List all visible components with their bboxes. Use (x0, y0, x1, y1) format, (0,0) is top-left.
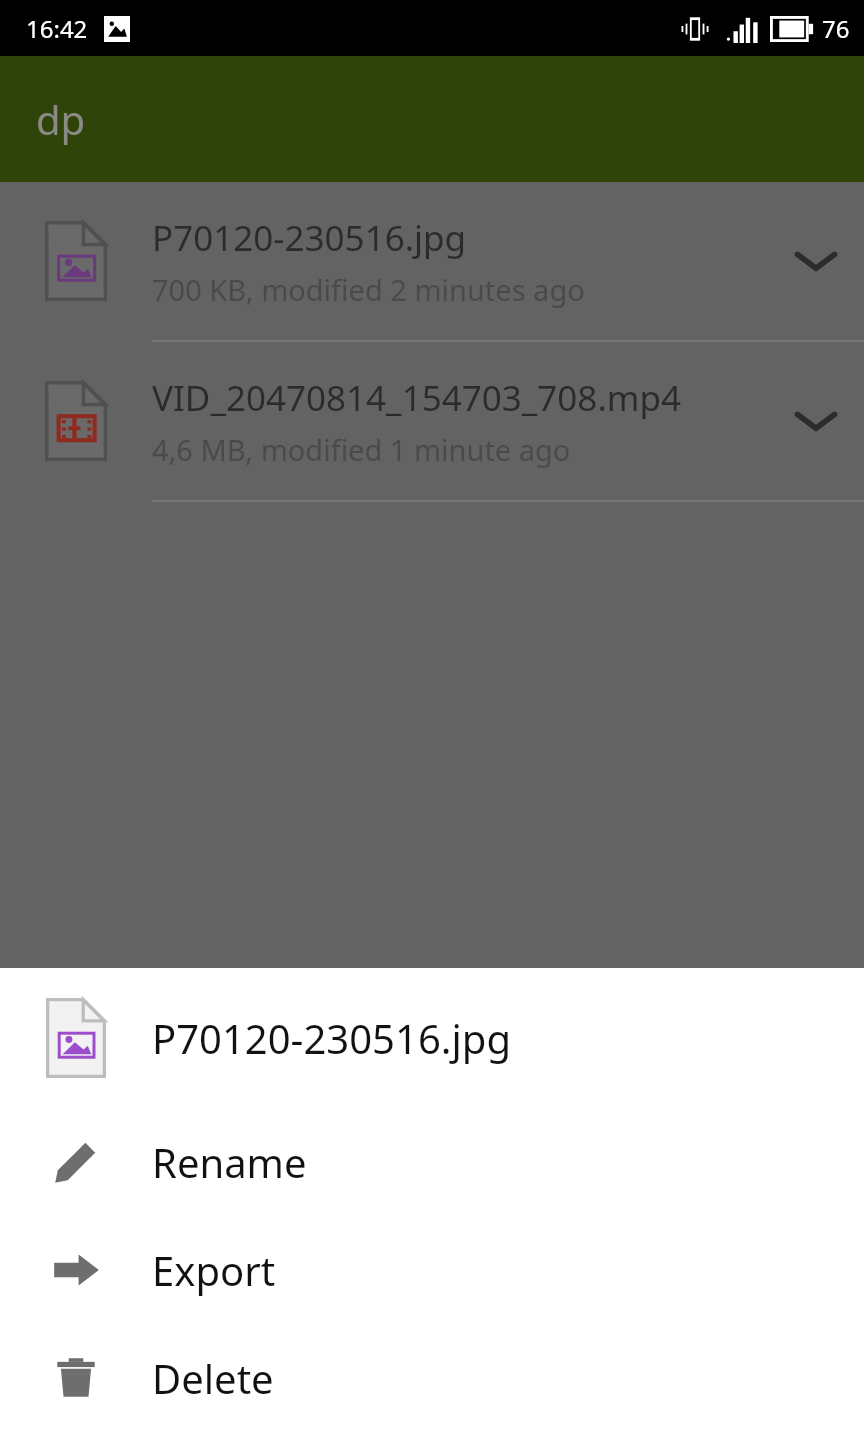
button[interactable]: Export (0, 1216, 864, 1324)
staticText: Rename (152, 1135, 307, 1189)
staticText: 700 KB, modified 2 minutes ago (152, 270, 585, 309)
staticText: Delete (152, 1351, 274, 1405)
staticText: P70120-230516.jpg (152, 214, 467, 262)
button[interactable]: VID_20470814_154703_708.mp4 (0, 342, 864, 500)
button[interactable]: P70120-230516.jpg (0, 968, 864, 1108)
staticText: dp (36, 92, 86, 146)
button[interactable]: Rename (0, 1108, 864, 1216)
staticText: 16:42 (26, 12, 88, 45)
staticText: 4,6 MB, modified 1 minute ago (152, 430, 571, 469)
button[interactable]: P70120-230516.jpg (0, 182, 864, 340)
staticText: Export (152, 1243, 276, 1297)
button[interactable]: Expand (768, 342, 864, 500)
button[interactable]: Delete (0, 1324, 864, 1432)
button[interactable]: Expand (768, 182, 864, 340)
staticText: P70120-230516.jpg (152, 1011, 844, 1065)
staticText: VID_20470814_154703_708.mp4 (152, 374, 682, 422)
staticText: 76 (822, 12, 850, 45)
